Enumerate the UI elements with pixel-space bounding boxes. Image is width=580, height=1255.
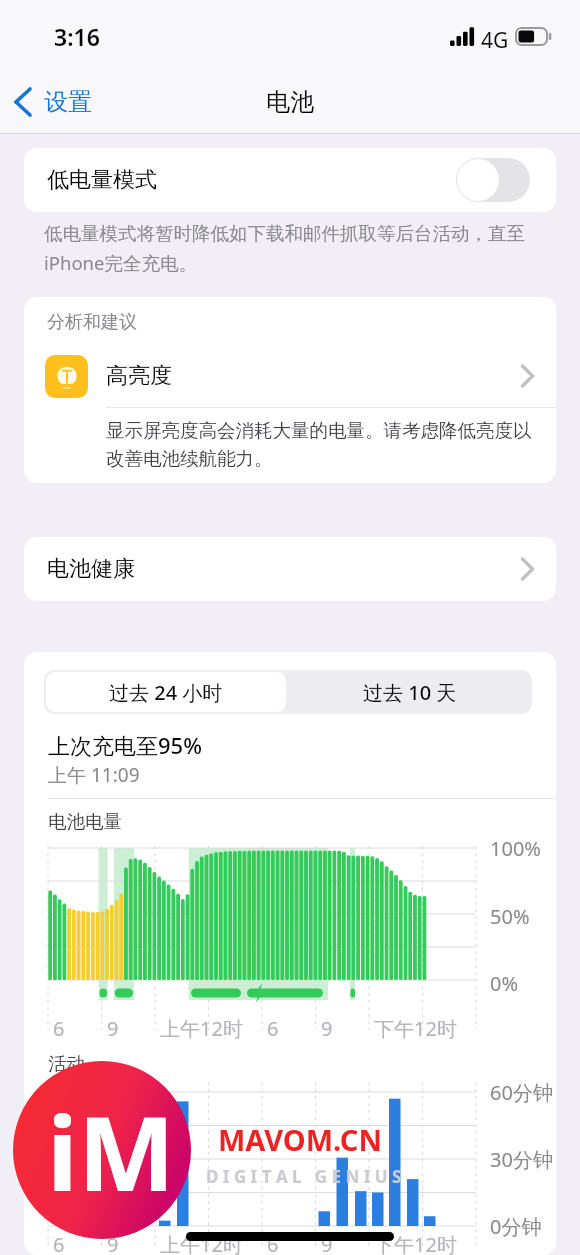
staticText: 上午12时 bbox=[160, 1015, 243, 1042]
staticText: 显示屏亮度高会消耗大量的电量。请考虑降低亮度以 bbox=[106, 419, 532, 442]
staticText: 6 bbox=[53, 1015, 65, 1042]
staticText: 下午12时 bbox=[374, 1231, 457, 1255]
staticText: 4G bbox=[481, 26, 509, 55]
staticText: 过去 10 天 bbox=[363, 679, 457, 706]
button[interactable]: 设置 bbox=[10, 78, 92, 126]
staticText: 0% bbox=[490, 970, 519, 997]
staticText: 50% bbox=[490, 903, 530, 930]
staticText: 9 bbox=[107, 1231, 119, 1255]
staticText: MAVOM.CN bbox=[218, 1120, 382, 1159]
staticText: 电池 bbox=[266, 87, 314, 117]
staticText: iPhone完全充电。 bbox=[44, 250, 197, 275]
staticText: 电池电量 bbox=[48, 810, 122, 833]
button[interactable]: 低电量模式 bbox=[24, 148, 556, 212]
staticText: 3:16 bbox=[54, 21, 100, 52]
staticText: 低电量模式 bbox=[47, 166, 157, 194]
staticText: 活动 bbox=[48, 1052, 85, 1075]
staticText: 6 bbox=[267, 1231, 279, 1255]
button[interactable]: 高亮度 bbox=[24, 345, 556, 407]
staticText: 过去 24 小时 bbox=[109, 679, 223, 706]
staticText: 6 bbox=[53, 1231, 65, 1255]
staticText: 上次充电至95% bbox=[48, 730, 202, 760]
staticText: 高亮度 bbox=[106, 362, 172, 390]
staticText: 60分钟 bbox=[490, 1079, 553, 1106]
staticText: D I G I T A L G E N I U S bbox=[206, 1165, 402, 1188]
staticText: 6 bbox=[267, 1015, 279, 1042]
staticText: 30分钟 bbox=[490, 1146, 553, 1173]
other: 打开 bbox=[521, 365, 534, 387]
staticText: 100% bbox=[490, 835, 541, 862]
button[interactable]: 电池健康 bbox=[24, 537, 556, 601]
staticText: 0分钟 bbox=[490, 1213, 542, 1240]
button[interactable]: 低电量模式开关 bbox=[456, 158, 530, 202]
staticText: 9 bbox=[321, 1015, 333, 1042]
other: 打开 bbox=[521, 558, 534, 580]
staticText: 上午 11:09 bbox=[48, 762, 140, 788]
staticText: 设置 bbox=[44, 87, 92, 117]
staticText: 下午12时 bbox=[374, 1015, 457, 1042]
staticText: 改善电池续航能力。 bbox=[106, 447, 273, 470]
staticText: 低电量模式将暂时降低如下载和邮件抓取等后台活动，直至 bbox=[44, 222, 525, 245]
staticText: 9 bbox=[107, 1015, 119, 1042]
staticText: 分析和建议 bbox=[47, 311, 137, 334]
staticText: 上午12时 bbox=[160, 1231, 243, 1255]
button[interactable]: 过去 10 天 bbox=[288, 670, 532, 714]
staticText: 9 bbox=[321, 1231, 333, 1255]
staticText: 电池健康 bbox=[47, 555, 135, 583]
staticText: iM bbox=[47, 1081, 175, 1221]
button[interactable]: 过去 24 小时 bbox=[46, 672, 286, 712]
